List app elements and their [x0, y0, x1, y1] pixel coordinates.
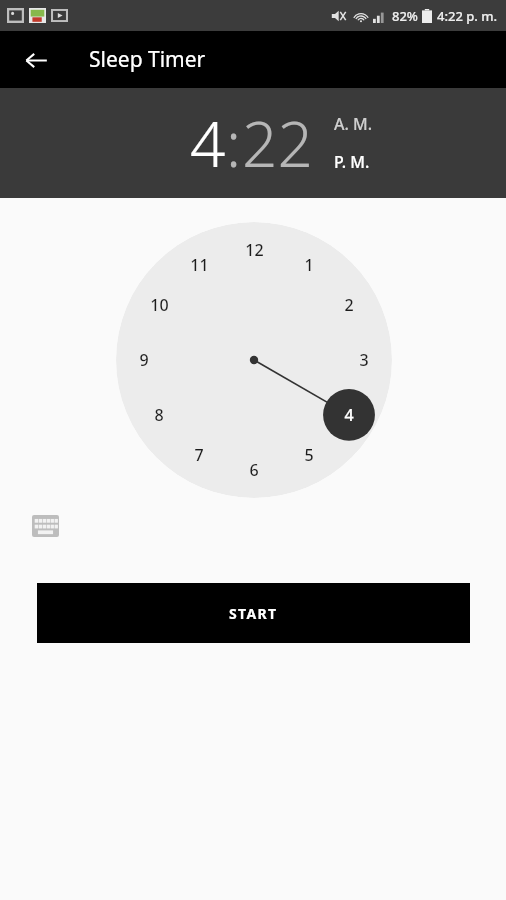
staticText: 12 — [245, 239, 264, 261]
button[interactable]: 22 — [242, 101, 313, 185]
staticText: 8 — [154, 404, 164, 426]
button[interactable]: 4 — [190, 101, 226, 185]
staticText: 9 — [139, 349, 149, 371]
staticText: 6 — [249, 459, 259, 481]
staticText: P. M. — [334, 151, 370, 173]
staticText: 10 — [150, 294, 169, 316]
staticText: 82% — [392, 7, 418, 25]
staticText: 11 — [190, 254, 209, 276]
staticText: START — [229, 604, 278, 623]
staticText: 5 — [304, 444, 314, 466]
button[interactable]: A. M. — [334, 113, 373, 135]
staticText: 2 — [344, 294, 354, 316]
staticText: 4 — [344, 404, 354, 426]
staticText: A. M. — [334, 113, 373, 135]
button[interactable]: Back — [14, 38, 58, 82]
staticText: 4:22 p. m. — [437, 7, 498, 25]
button[interactable]: START — [37, 583, 470, 643]
staticText: 7 — [194, 444, 204, 466]
button[interactable]: Switch to text input — [26, 510, 64, 542]
button[interactable]: Clock dial — [116, 222, 392, 498]
staticText: Sleep Timer — [89, 45, 206, 74]
button[interactable]: P. M. — [334, 151, 370, 173]
staticText: : — [226, 101, 242, 185]
staticText: 3 — [359, 349, 369, 371]
staticText: 1 — [304, 254, 314, 276]
